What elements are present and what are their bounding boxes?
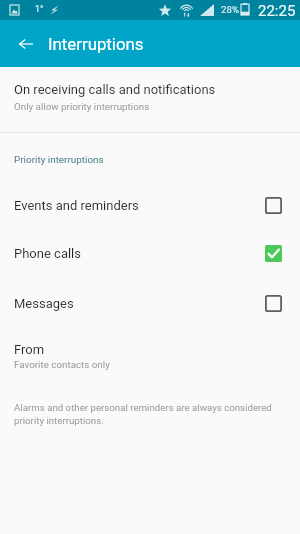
button[interactable]: Events and reminders	[0, 188, 300, 222]
button[interactable]: Navigate up	[7, 20, 45, 67]
staticText: Events and reminders	[14, 198, 139, 213]
staticText: Priority interruptions	[14, 154, 104, 166]
staticText: Only allow priority interruptions	[14, 101, 150, 112]
other: Not checked	[265, 295, 282, 312]
staticText: On receiving calls and notifications	[14, 82, 216, 97]
staticText: Phone calls	[14, 246, 81, 261]
staticText: 22:25	[258, 2, 296, 20]
staticText: Favorite contacts only	[14, 359, 110, 370]
other: Not checked	[265, 197, 282, 214]
button[interactable]: Messages	[0, 286, 300, 320]
button[interactable]: Phone calls	[0, 236, 300, 270]
button[interactable]: From	[0, 338, 300, 384]
staticText: Alarms and other personal reminders are …	[14, 402, 285, 426]
staticText: Interruptions	[48, 34, 144, 54]
staticText: 28%	[221, 4, 239, 15]
staticText: 1°	[35, 4, 44, 15]
button[interactable]: On receiving calls and notifications	[0, 67, 300, 132]
staticText: Messages	[14, 296, 74, 311]
staticText: From	[14, 342, 45, 357]
other: Checked	[265, 245, 282, 262]
